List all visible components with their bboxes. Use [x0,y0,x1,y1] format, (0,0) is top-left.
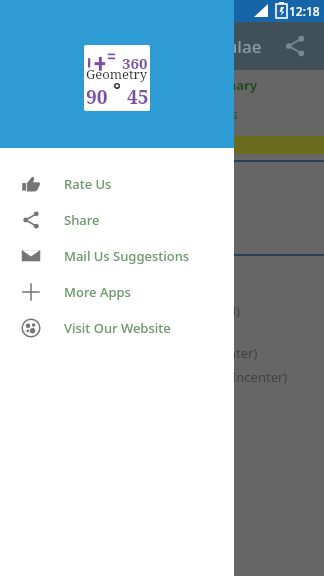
button[interactable]: More Apps [0,274,234,310]
staticText: More Apps [64,283,131,301]
staticText: Visit Our Website [64,319,171,337]
button[interactable]: Share [0,202,234,238]
staticText: Share [64,211,100,229]
staticText: Geometry [86,65,148,83]
staticText: 45 [127,84,149,110]
staticText: Dictionary [190,76,258,94]
button[interactable]: Share [282,33,308,59]
staticText: Rate Us [64,175,112,193]
staticText: s [232,106,238,122]
staticText: (Incenter) [228,368,288,386]
button[interactable]: Rate Us [0,166,234,202]
button[interactable]: Mail Us Suggestions [0,238,234,274]
staticText: Mail Us Suggestions [64,247,190,265]
button[interactable]: Visit Our Website [0,310,234,346]
staticText: 12:18 [289,3,320,19]
staticText: Formulae [184,35,262,58]
staticText: 90 [86,84,108,110]
staticText: d) [228,302,240,320]
staticText: 360 [122,53,148,73]
staticText: nter) [228,344,258,362]
